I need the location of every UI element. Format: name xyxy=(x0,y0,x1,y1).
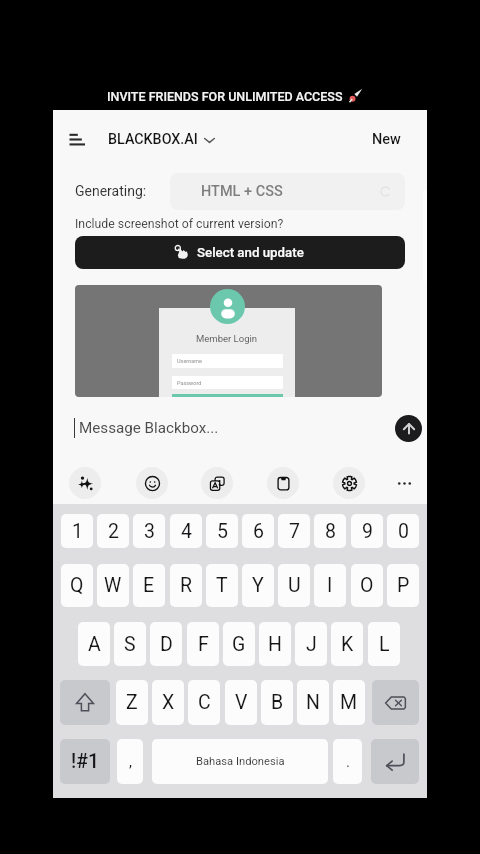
staticText: O xyxy=(360,574,374,597)
button[interactable]: Send xyxy=(395,415,422,442)
staticText: Include screenshot of current version? xyxy=(75,217,284,231)
staticText: V xyxy=(235,691,248,714)
button[interactable]: B xyxy=(261,680,293,725)
button[interactable]: 8 xyxy=(314,514,346,548)
button[interactable]: Bahasa Indonesia xyxy=(152,739,328,784)
button[interactable]: 7 xyxy=(278,514,310,548)
staticText: 0 xyxy=(398,520,409,543)
staticText: 5 xyxy=(217,520,228,543)
staticText: R xyxy=(180,574,193,597)
button[interactable]: HTML + CSS xyxy=(170,173,405,210)
staticText: G xyxy=(232,633,246,656)
button[interactable]: Settings xyxy=(333,467,365,499)
staticText: HTML + CSS xyxy=(201,183,283,200)
staticText: !#1 xyxy=(71,750,100,773)
button[interactable]: A xyxy=(78,622,110,666)
staticText: J xyxy=(306,633,317,656)
button[interactable]: 2 xyxy=(97,514,129,548)
staticText: Member Login xyxy=(196,333,258,344)
button[interactable]: T xyxy=(206,564,238,607)
button[interactable]: N xyxy=(297,680,329,725)
button[interactable]: L xyxy=(368,622,400,666)
staticText: Message Blackbox... xyxy=(79,419,219,437)
button[interactable]: K xyxy=(331,622,363,666)
button[interactable]: 6 xyxy=(242,514,274,548)
staticText: BLACKBOX.AI xyxy=(108,131,198,148)
button[interactable]: Backspace xyxy=(372,680,419,725)
button[interactable]: 1 xyxy=(61,514,93,548)
button[interactable]: Enter xyxy=(371,739,419,784)
button[interactable]: W xyxy=(97,564,129,607)
staticText: Username xyxy=(177,358,202,364)
button[interactable]: F xyxy=(187,622,219,666)
staticText: D xyxy=(160,633,173,656)
button[interactable]: M xyxy=(333,680,365,725)
button[interactable]: , xyxy=(117,739,143,784)
staticText: Z xyxy=(126,691,138,714)
button[interactable]: Shift xyxy=(60,680,110,725)
button[interactable]: Z xyxy=(116,680,148,725)
staticText: Y xyxy=(252,574,264,597)
button[interactable]: AI xyxy=(69,467,101,499)
staticText: Q xyxy=(70,574,84,597)
button[interactable]: J xyxy=(295,622,327,666)
button[interactable]: I xyxy=(314,564,346,607)
staticText: H xyxy=(268,633,282,656)
staticText: 8 xyxy=(325,520,336,543)
button[interactable]: 3 xyxy=(133,514,165,548)
button[interactable]: 9 xyxy=(351,514,383,548)
button[interactable]: !#1 xyxy=(60,739,110,784)
button[interactable]: D xyxy=(150,622,182,666)
button[interactable]: Image xyxy=(201,467,233,499)
button[interactable]: Clipboard xyxy=(267,467,299,499)
button[interactable]: 4 xyxy=(170,514,202,548)
staticText: N xyxy=(306,691,320,714)
staticText: Select and update xyxy=(197,245,304,261)
button[interactable]: P xyxy=(387,564,419,607)
button[interactable]: Message Blackbox... xyxy=(75,411,305,445)
button[interactable]: X xyxy=(152,680,184,725)
button[interactable]: R xyxy=(170,564,202,607)
staticText: 9 xyxy=(362,520,373,543)
button[interactable]: Y xyxy=(242,564,274,607)
staticText: A xyxy=(88,633,101,656)
button[interactable]: 5 xyxy=(206,514,238,548)
button[interactable]: Menu xyxy=(61,126,93,153)
button[interactable]: C xyxy=(188,680,220,725)
button[interactable]: Preview image xyxy=(75,285,382,397)
button[interactable]: U xyxy=(278,564,310,607)
staticText: 2 xyxy=(108,520,119,543)
staticText: 3 xyxy=(144,520,155,543)
button[interactable]: Q xyxy=(61,564,93,607)
staticText: M xyxy=(340,691,358,714)
staticText: X xyxy=(162,691,175,714)
staticText: , xyxy=(129,753,132,771)
staticText: B xyxy=(271,691,284,714)
button[interactable]: S xyxy=(114,622,146,666)
button[interactable]: Select and update xyxy=(75,236,405,269)
button[interactable]: More xyxy=(388,467,420,499)
staticText: Generating: xyxy=(75,183,147,199)
staticText: U xyxy=(288,574,301,597)
staticText: P xyxy=(397,574,410,597)
staticText: New xyxy=(372,131,401,148)
staticText: E xyxy=(143,574,155,597)
button[interactable]: V xyxy=(225,680,257,725)
button[interactable]: New xyxy=(366,126,406,153)
button[interactable]: 0 xyxy=(387,514,419,548)
staticText: S xyxy=(124,633,136,656)
staticText: Password xyxy=(177,380,202,386)
staticText: 7 xyxy=(289,520,300,543)
button[interactable]: O xyxy=(351,564,383,607)
button[interactable]: G xyxy=(223,622,255,666)
staticText: 4 xyxy=(181,520,192,543)
staticText: 1 xyxy=(72,520,83,543)
staticText: L xyxy=(379,633,390,656)
button[interactable]: BLACKBOX.AI xyxy=(102,126,220,153)
button[interactable]: Emoji xyxy=(136,467,168,499)
button[interactable]: H xyxy=(259,622,291,666)
button[interactable]: E xyxy=(133,564,165,607)
button[interactable]: . xyxy=(333,739,362,784)
staticText: INVITE FRIENDS FOR UNLIMITED ACCESS xyxy=(107,89,343,104)
staticText: F xyxy=(198,633,209,656)
